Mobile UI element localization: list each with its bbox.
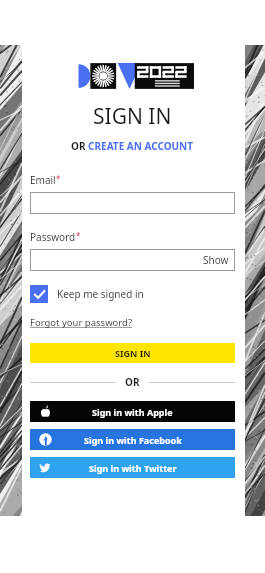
staticText: Keep me signed in xyxy=(57,287,144,301)
button[interactable] xyxy=(30,192,235,214)
button[interactable]: Forgot your password? xyxy=(30,316,235,329)
staticText: Email xyxy=(30,173,56,187)
staticText: * xyxy=(56,173,61,184)
button[interactable]: Keep me signed in xyxy=(30,285,235,303)
button[interactable]: SIGN IN xyxy=(30,343,235,363)
button[interactable]: Show xyxy=(30,249,235,271)
button[interactable]: Sign in with Facebook xyxy=(30,429,235,450)
staticText: SIGN IN xyxy=(93,102,172,131)
staticText: Sign in with Twitter xyxy=(89,462,177,474)
staticText: OR CREATE AN ACCOUNT xyxy=(71,139,194,153)
staticText: Password xyxy=(30,230,76,244)
button[interactable]: Sign in with Twitter xyxy=(30,457,235,478)
staticText: * xyxy=(76,230,81,241)
staticText: SIGN IN xyxy=(115,347,151,359)
staticText: Forgot your password? xyxy=(30,316,133,329)
button[interactable]: OR CREATE AN ACCOUNT xyxy=(71,139,194,153)
button[interactable]: Sign in with Apple xyxy=(30,401,235,422)
staticText: Sign in with Facebook xyxy=(84,434,182,446)
staticText: OR xyxy=(125,375,140,389)
staticText: Sign in with Apple xyxy=(92,406,173,418)
staticText: Show xyxy=(203,253,229,267)
